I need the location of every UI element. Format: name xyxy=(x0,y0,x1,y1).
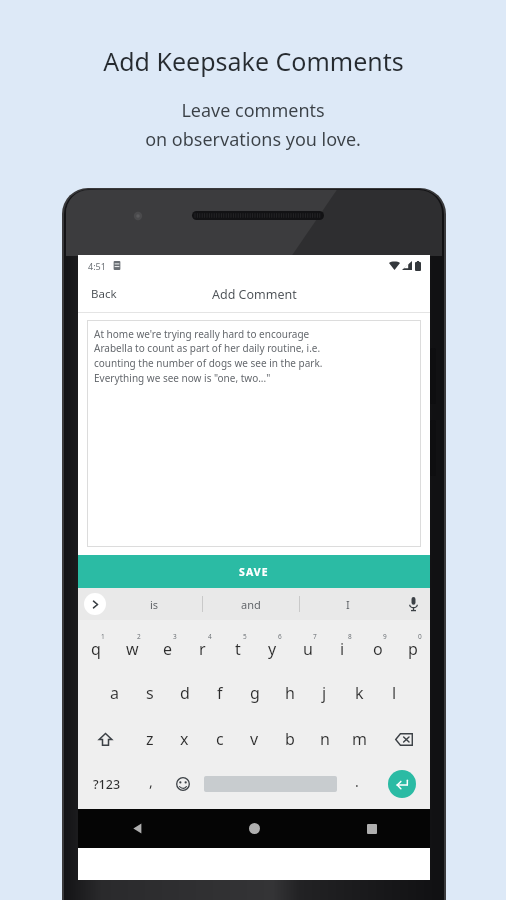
staticText: 5 xyxy=(243,632,247,641)
staticText: 0 xyxy=(418,632,422,641)
button[interactable]: 8 xyxy=(325,624,360,670)
button[interactable]: Backspace xyxy=(377,716,430,762)
staticText: u xyxy=(303,638,313,660)
staticText: p xyxy=(408,638,418,660)
button[interactable]: 5 xyxy=(220,624,255,670)
button[interactable]: m xyxy=(342,716,377,762)
staticText: g xyxy=(250,682,260,704)
button[interactable]: Back xyxy=(78,809,196,848)
staticText: j xyxy=(322,682,327,704)
staticText: a xyxy=(110,682,119,704)
staticText: ?123 xyxy=(93,776,121,793)
button[interactable]: Enter xyxy=(388,770,416,798)
button[interactable]: d xyxy=(167,670,202,716)
button[interactable]: At home we're trying really hard to enco… xyxy=(87,320,421,547)
button[interactable]: Voice input xyxy=(396,588,430,620)
button[interactable]: 7 xyxy=(290,624,325,670)
button[interactable]: b xyxy=(272,716,307,762)
button[interactable]: k xyxy=(342,670,377,716)
button[interactable]: SAVE xyxy=(78,555,430,588)
button[interactable]: 4 xyxy=(185,624,220,670)
staticText: q xyxy=(91,638,101,660)
staticText: Back xyxy=(91,286,117,302)
staticText: 7 xyxy=(313,632,317,641)
staticText: k xyxy=(355,682,364,704)
staticText: y xyxy=(268,638,277,660)
staticText: f xyxy=(217,682,223,704)
button[interactable]: s xyxy=(132,670,167,716)
button[interactable]: , xyxy=(135,762,167,806)
button[interactable]: n xyxy=(307,716,342,762)
staticText: on observations you love. xyxy=(145,127,361,152)
button[interactable]: 3 xyxy=(150,624,185,670)
button[interactable]: c xyxy=(202,716,237,762)
button[interactable]: Home xyxy=(196,809,313,848)
button[interactable]: g xyxy=(237,670,272,716)
button[interactable]: f xyxy=(202,670,237,716)
staticText: 1 xyxy=(101,632,105,641)
staticText: is xyxy=(150,597,159,612)
staticText: 3 xyxy=(173,632,177,641)
staticText: m xyxy=(352,728,367,750)
staticText: o xyxy=(373,638,383,660)
button[interactable]: x xyxy=(167,716,202,762)
staticText: SAVE xyxy=(239,565,269,579)
staticText: l xyxy=(392,682,397,704)
staticText: s xyxy=(146,682,154,704)
staticText: Add Keepsake Comments xyxy=(103,44,404,78)
button[interactable]: Emoji xyxy=(167,762,199,806)
button[interactable]: 1 xyxy=(78,624,114,670)
staticText: 9 xyxy=(383,632,387,641)
staticText: e xyxy=(163,638,173,660)
staticText: At home we're trying really hard to enco… xyxy=(94,327,323,385)
button[interactable]: 9 xyxy=(360,624,395,670)
button[interactable]: Shift xyxy=(78,716,132,762)
staticText: d xyxy=(180,682,190,704)
staticText: 4 xyxy=(208,632,212,641)
staticText: . xyxy=(355,772,359,791)
staticText: n xyxy=(320,728,330,750)
button[interactable]: 6 xyxy=(255,624,290,670)
staticText: and xyxy=(241,597,261,612)
staticText: 2 xyxy=(137,632,141,641)
button[interactable]: More suggestions xyxy=(84,593,106,615)
staticText: h xyxy=(285,682,295,704)
staticText: I xyxy=(346,597,350,612)
staticText: 6 xyxy=(278,632,282,641)
staticText: c xyxy=(216,728,224,750)
button[interactable]: 0 xyxy=(395,624,430,670)
staticText: z xyxy=(146,728,154,750)
button[interactable]: Space xyxy=(199,762,341,806)
button[interactable]: . xyxy=(341,762,373,806)
button[interactable]: 2 xyxy=(114,624,150,670)
button[interactable]: h xyxy=(272,670,307,716)
button[interactable]: v xyxy=(237,716,272,762)
staticText: Leave comments xyxy=(181,98,325,123)
staticText: 4:51 xyxy=(88,260,106,272)
staticText: x xyxy=(180,728,189,750)
staticText: t xyxy=(235,638,241,660)
button[interactable]: and xyxy=(203,588,299,620)
button[interactable]: ?123 xyxy=(78,762,135,806)
button[interactable]: I xyxy=(300,588,396,620)
staticText: , xyxy=(149,772,153,791)
button[interactable]: Recents xyxy=(313,809,430,848)
button[interactable]: j xyxy=(307,670,342,716)
button[interactable]: l xyxy=(377,670,412,716)
staticText: r xyxy=(199,638,206,660)
button[interactable]: a xyxy=(97,670,132,716)
button[interactable]: Back xyxy=(78,278,130,310)
staticText: w xyxy=(126,638,139,660)
staticText: i xyxy=(340,638,345,660)
button[interactable]: is xyxy=(106,588,202,620)
staticText: v xyxy=(250,728,259,750)
staticText: b xyxy=(285,728,295,750)
button[interactable]: z xyxy=(132,716,167,762)
staticText: Add Comment xyxy=(212,286,297,303)
staticText: 8 xyxy=(348,632,352,641)
